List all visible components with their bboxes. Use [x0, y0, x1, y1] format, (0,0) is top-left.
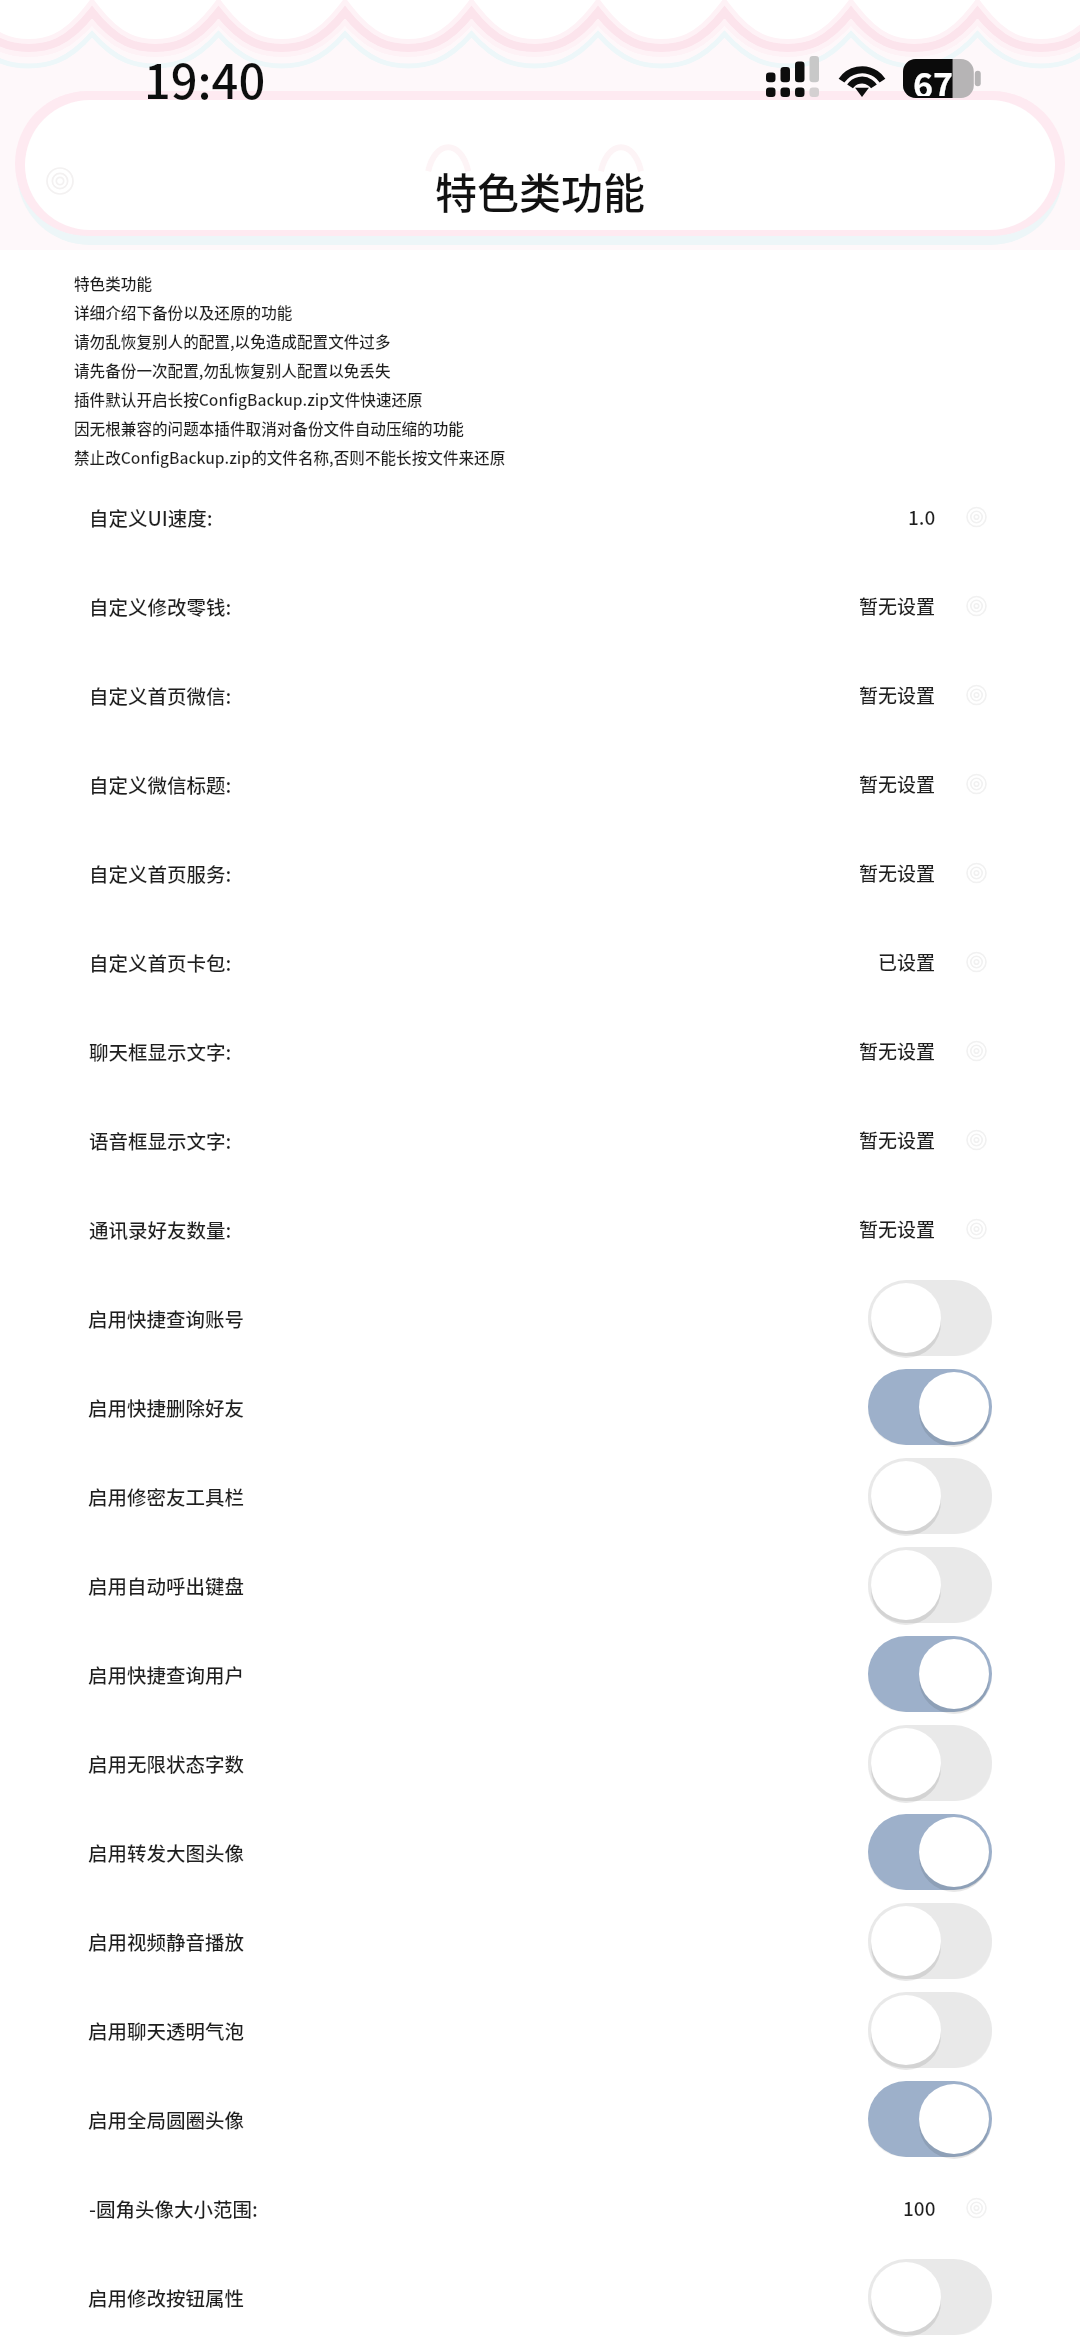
button[interactable]: Off: [868, 1992, 992, 2068]
staticText: 详细介绍下备份以及还原的功能: [74, 301, 293, 324]
button[interactable]: Off: [868, 1725, 992, 1801]
button[interactable]: Off: [868, 1280, 992, 1356]
button[interactable]: On: [868, 1814, 992, 1890]
staticText: 自定义修改零钱:: [89, 592, 232, 620]
staticText: 自定义微信标题:: [89, 770, 232, 798]
button[interactable]: 自定义微信标题:: [0, 739, 1080, 828]
button[interactable]: 启用自动呼出键盘: [0, 1540, 1080, 1629]
staticText: 插件默认开启长按ConfigBackup.zip文件快速还原: [74, 388, 423, 411]
staticText: 暂无设置: [859, 770, 936, 798]
staticText: 暂无设置: [859, 1215, 936, 1243]
staticText: 自定义首页微信:: [89, 681, 232, 709]
button[interactable]: 自定义首页微信:: [0, 650, 1080, 739]
button[interactable]: On: [868, 1369, 992, 1445]
staticText: 启用快捷查询用户: [88, 1660, 245, 1688]
button[interactable]: 启用全局圆圈头像: [0, 2074, 1080, 2163]
staticText: 启用无限状态字数: [88, 1749, 245, 1777]
staticText: 因无根兼容的问题本插件取消对备份文件自动压缩的功能: [74, 417, 464, 440]
staticText: 启用快捷删除好友: [88, 1393, 245, 1421]
button[interactable]: 自定义UI速度:: [0, 472, 1080, 561]
button[interactable]: 启用转发大图头像: [0, 1807, 1080, 1896]
button[interactable]: 启用聊天透明气泡: [0, 1985, 1080, 2074]
staticText: 请先备份一次配置,勿乱恢复别人配置以免丢失: [74, 359, 391, 382]
button[interactable]: -圆角头像大小范围:: [0, 2163, 1080, 2252]
staticText: 通讯录好友数量:: [89, 1215, 232, 1243]
button[interactable]: Off: [868, 1547, 992, 1623]
button[interactable]: Off: [868, 1458, 992, 1534]
staticText: 100: [903, 2194, 936, 2222]
staticText: 启用全局圆圈头像: [88, 2105, 245, 2133]
staticText: 暂无设置: [859, 592, 936, 620]
staticText: 特色类功能: [74, 272, 152, 295]
staticText: 启用聊天透明气泡: [88, 2016, 245, 2044]
staticText: 19:40: [144, 44, 266, 112]
staticText: 1.0: [908, 503, 936, 531]
staticText: 自定义首页卡包:: [89, 948, 232, 976]
button[interactable]: 自定义首页卡包:: [0, 917, 1080, 1006]
other: Wi-Fi: [838, 61, 886, 97]
other: Mobile signal: [766, 60, 819, 97]
staticText: 已设置: [878, 948, 936, 976]
button[interactable]: 通讯录好友数量:: [0, 1184, 1080, 1273]
button[interactable]: On: [868, 1636, 992, 1712]
staticText: 禁止改ConfigBackup.zip的文件名称,否则不能长按文件来还原: [74, 446, 506, 469]
button[interactable]: 启用修改按钮属性: [0, 2252, 1080, 2341]
button[interactable]: 自定义首页服务:: [0, 828, 1080, 917]
button[interactable]: Off: [868, 1903, 992, 1979]
staticText: 聊天框显示文字:: [89, 1037, 232, 1065]
staticText: 请勿乱恢复别人的配置,以免造成配置文件过多: [74, 330, 391, 353]
staticText: 自定义首页服务:: [89, 859, 232, 887]
button[interactable]: 启用无限状态字数: [0, 1718, 1080, 1807]
staticText: 暂无设置: [859, 1037, 936, 1065]
staticText: -圆角头像大小范围:: [89, 2194, 258, 2222]
staticText: 启用视频静音播放: [88, 1927, 245, 1955]
staticText: 特色类功能: [435, 160, 646, 221]
button[interactable]: On: [868, 2081, 992, 2157]
button[interactable]: 启用快捷查询账号: [0, 1273, 1080, 1362]
staticText: 暂无设置: [859, 859, 936, 887]
staticText: 启用快捷查询账号: [88, 1304, 245, 1332]
staticText: 暂无设置: [859, 1126, 936, 1154]
staticText: 启用转发大图头像: [88, 1838, 245, 1866]
staticText: 67: [913, 59, 954, 96]
staticText: 启用修密友工具栏: [88, 1482, 245, 1510]
other: Battery 67 percent: [903, 59, 983, 98]
button[interactable]: 启用修密友工具栏: [0, 1451, 1080, 1540]
staticText: 启用自动呼出键盘: [88, 1571, 245, 1599]
staticText: 语音框显示文字:: [89, 1126, 232, 1154]
button[interactable]: 聊天框显示文字:: [0, 1006, 1080, 1095]
button[interactable]: 自定义修改零钱:: [0, 561, 1080, 650]
button[interactable]: Off: [868, 2259, 992, 2335]
button[interactable]: 语音框显示文字:: [0, 1095, 1080, 1184]
button[interactable]: 启用快捷删除好友: [0, 1362, 1080, 1451]
button[interactable]: 启用视频静音播放: [0, 1896, 1080, 1985]
staticText: 暂无设置: [859, 681, 936, 709]
staticText: 自定义UI速度:: [89, 503, 213, 531]
staticText: 启用修改按钮属性: [88, 2283, 245, 2311]
button[interactable]: 启用快捷查询用户: [0, 1629, 1080, 1718]
